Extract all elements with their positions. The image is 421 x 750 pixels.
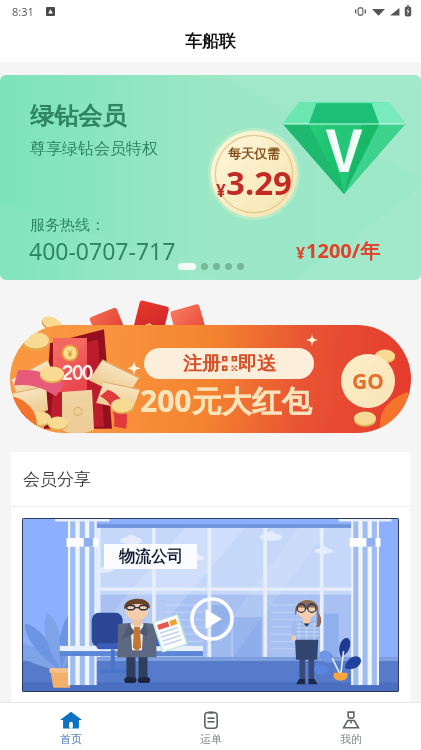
button[interactable]: 会员分享 xyxy=(11,452,410,506)
staticText: 即送 xyxy=(238,352,276,376)
button[interactable]: 我的 xyxy=(281,703,421,750)
staticText: 400-0707-717 xyxy=(29,235,176,266)
staticText: 我的 xyxy=(340,732,362,746)
button[interactable]: 绿钻会员 xyxy=(0,75,421,280)
staticText: 每天仅需 xyxy=(228,145,280,161)
staticText: 尊享绿钻会员特权 xyxy=(30,139,158,159)
button[interactable]: 物流公司 xyxy=(22,518,399,692)
staticText: 3.29 xyxy=(226,160,292,205)
staticText: 服务热线： xyxy=(30,216,105,235)
button[interactable]: 首页 xyxy=(0,703,141,750)
button[interactable]: 运单 xyxy=(141,703,281,750)
staticText: ¥ xyxy=(296,242,306,264)
staticText: 物流公司 xyxy=(119,547,183,567)
staticText: 200元大红包 xyxy=(140,380,312,421)
staticText: 运单 xyxy=(200,732,222,746)
button[interactable]: 注册 xyxy=(10,325,411,433)
staticText: 会员分享 xyxy=(23,469,91,490)
staticText: ¥ xyxy=(216,179,226,202)
staticText: GO xyxy=(352,367,384,396)
staticText: 绿钻会员 xyxy=(30,101,126,131)
staticText: 1200/年 xyxy=(306,237,381,264)
staticText: 注册 xyxy=(183,352,221,376)
staticText: 首页 xyxy=(60,732,82,746)
staticText: 车船联 xyxy=(185,31,236,52)
staticText: 8:31 xyxy=(12,4,34,19)
